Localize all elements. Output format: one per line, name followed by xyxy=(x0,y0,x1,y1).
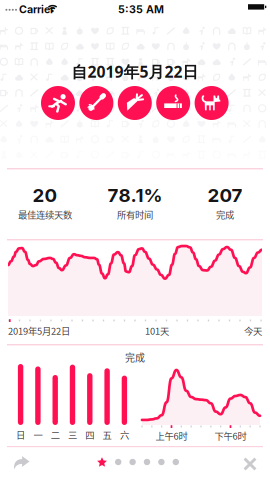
button[interactable]: Close xyxy=(236,454,264,474)
staticText: 101天 xyxy=(145,324,169,337)
staticText: 上午6时 xyxy=(155,429,187,442)
staticText: 207 xyxy=(207,184,242,207)
staticText: 三 xyxy=(68,428,77,441)
staticText: 五 xyxy=(103,428,112,441)
staticText: 完成 xyxy=(125,350,145,364)
staticText: 5:35 AM xyxy=(118,3,164,16)
staticText: 四 xyxy=(85,428,94,441)
staticText: 完成 xyxy=(216,208,234,221)
staticText: 20 xyxy=(32,184,57,207)
staticText: 六 xyxy=(120,428,129,441)
button[interactable]: Eat vegetables xyxy=(118,86,152,120)
staticText: 78.1% xyxy=(107,184,162,207)
button[interactable]: Walk the dog xyxy=(195,86,229,120)
staticText: 2019年5月22日 xyxy=(8,324,70,337)
staticText: Carrier xyxy=(19,3,54,16)
staticText: 一 xyxy=(33,428,42,441)
staticText: 二 xyxy=(51,428,60,441)
button[interactable]: Quit smoking xyxy=(156,86,190,120)
staticText: 今天 xyxy=(244,324,262,337)
button[interactable]: Exercise xyxy=(41,86,75,120)
staticText: 日 xyxy=(16,428,25,441)
staticText: 最佳连续天数 xyxy=(18,208,72,221)
staticText: 下午6时 xyxy=(214,429,246,442)
staticText: 所有时间 xyxy=(117,208,153,221)
button[interactable]: Brush teeth xyxy=(79,86,113,120)
staticText: 自2019年5月22日 xyxy=(71,61,198,82)
button[interactable]: Share xyxy=(6,452,36,474)
